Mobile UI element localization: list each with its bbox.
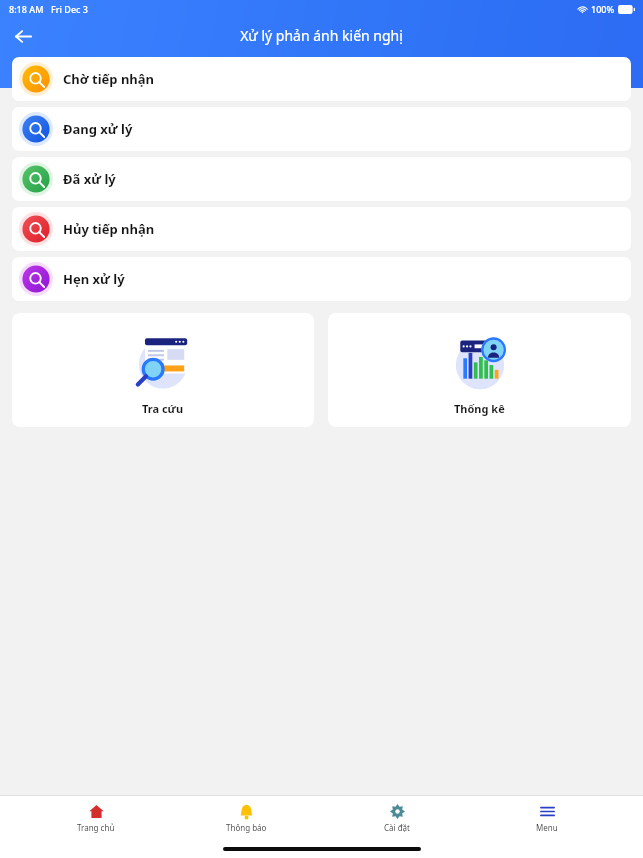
button[interactable]: Đã xử lý (12, 157, 631, 201)
staticText: Đã xử lý (63, 170, 116, 188)
button[interactable]: Menu (492, 796, 602, 840)
button[interactable]: Hẹn xử lý (12, 257, 631, 301)
button[interactable]: Tra cứu (12, 313, 314, 427)
staticText: 8:18 AM (9, 3, 44, 15)
button[interactable]: Back (6, 19, 40, 53)
staticText: Hủy tiếp nhận (63, 220, 155, 238)
button[interactable]: Thông báo (191, 796, 301, 840)
staticText: Cài đặt (384, 822, 410, 833)
button[interactable]: Hủy tiếp nhận (12, 207, 631, 251)
button[interactable]: Thống kê (328, 313, 631, 427)
staticText: 100% (591, 3, 615, 15)
staticText: Đang xử lý (63, 120, 133, 138)
staticText: Thống kê (454, 401, 505, 416)
staticText: Thông báo (226, 822, 267, 833)
staticText: Xử lý phản ánh kiến nghị (240, 26, 403, 45)
staticText: Trang chủ (77, 822, 115, 833)
staticText: Menu (536, 822, 558, 833)
staticText: Fri Dec 3 (51, 3, 88, 15)
button[interactable]: Đang xử lý (12, 107, 631, 151)
button[interactable]: Trang chủ (41, 796, 151, 840)
staticText: Tra cứu (142, 401, 184, 416)
button[interactable]: Cài đặt (342, 796, 452, 840)
staticText: Hẹn xử lý (63, 270, 125, 288)
staticText: Chờ tiếp nhận (63, 70, 155, 88)
button[interactable]: Chờ tiếp nhận (12, 57, 631, 101)
